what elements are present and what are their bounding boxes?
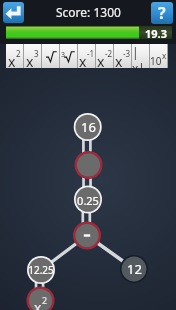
staticText: x: [26, 52, 34, 71]
staticText: 0.25: [77, 193, 99, 208]
staticText: -1: [87, 48, 95, 59]
staticText: ?: [158, 2, 166, 24]
staticText: x: [79, 52, 87, 71]
staticText: Score: 1300: [56, 4, 121, 20]
staticText: -3: [123, 48, 131, 59]
staticText: |x|: [132, 44, 149, 68]
staticText: x: [115, 52, 123, 71]
button[interactable]: rt3: [60, 44, 77, 68]
button[interactable]: 16: [74, 113, 102, 141]
staticText: x: [97, 52, 105, 71]
button[interactable]: 10x: [150, 44, 167, 68]
staticText: 12.25: [28, 263, 54, 277]
staticText: 16: [81, 118, 96, 136]
button[interactable]: x-2: [96, 44, 113, 68]
staticText: 2: [16, 48, 21, 59]
button[interactable]: abs: [132, 44, 149, 68]
button[interactable]: 12.25: [27, 256, 55, 284]
button[interactable]: x3: [24, 44, 41, 68]
staticText: 3: [61, 50, 66, 60]
staticText: 3: [34, 48, 39, 59]
button[interactable]: x-1: [78, 44, 95, 68]
button[interactable]: rt: [42, 44, 59, 68]
button[interactable]: x2: [6, 44, 23, 68]
button[interactable]: Help: [151, 2, 173, 24]
button[interactable]: 0.25: [74, 186, 102, 214]
staticText: 2: [42, 294, 48, 306]
staticText: x: [162, 50, 167, 61]
staticText: x: [8, 52, 16, 71]
staticText: -2: [105, 48, 113, 59]
staticText: 12: [127, 260, 142, 278]
button[interactable]: x: [27, 287, 55, 310]
button[interactable]: 12: [120, 255, 148, 283]
button[interactable]: Back: [3, 2, 24, 23]
staticText: x: [34, 298, 42, 310]
staticText: 10: [150, 54, 162, 68]
staticText: 19.3: [145, 26, 167, 39]
button[interactable]: x-3: [114, 44, 131, 68]
